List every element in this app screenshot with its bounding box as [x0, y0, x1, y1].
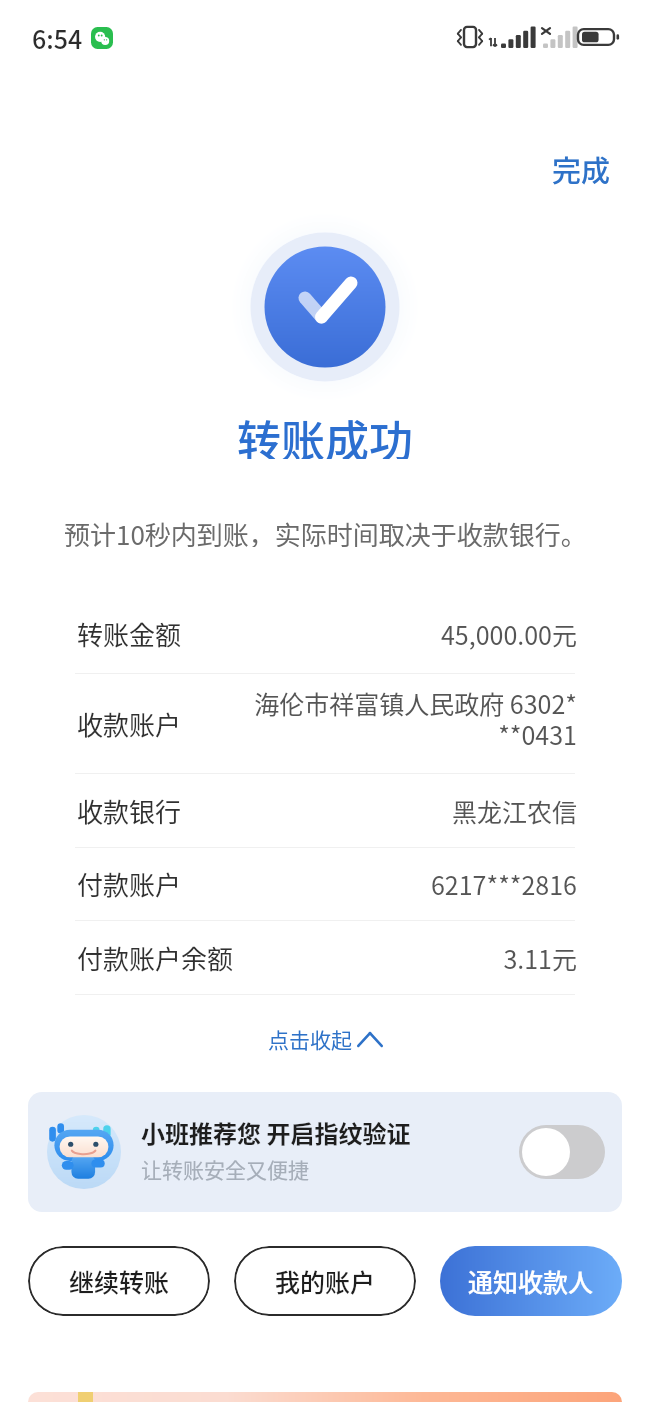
button[interactable]: [28, 1392, 622, 1402]
button[interactable]: Enable fingerprint verification: [519, 1125, 605, 1179]
staticText: 小班推荐您 开启指纹验证: [141, 1115, 411, 1150]
button[interactable]: 点击收起: [252, 1018, 399, 1060]
staticText: 转账金额: [77, 615, 182, 653]
staticText: 3.11元: [503, 940, 577, 976]
staticText: 点击收起: [268, 1024, 352, 1054]
staticText: 收款银行: [77, 792, 182, 830]
staticText: 继续转账: [69, 1263, 170, 1299]
staticText: 我的账户: [275, 1263, 376, 1299]
staticText: 收款账户: [77, 705, 182, 743]
staticText: 完成: [552, 148, 611, 190]
staticText: 付款账户: [77, 865, 182, 903]
button[interactable]: 继续转账: [28, 1246, 210, 1316]
button[interactable]: 通知收款人: [440, 1246, 622, 1316]
button[interactable]: 小班推荐您 开启指纹验证: [28, 1092, 622, 1212]
staticText: 黑龙江农信: [451, 793, 577, 829]
button[interactable]: 我的账户: [234, 1246, 416, 1316]
staticText: 6:54: [32, 20, 83, 56]
button[interactable]: 完成: [536, 138, 650, 196]
staticText: 付款账户余额: [77, 939, 234, 977]
staticText: 通知收款人: [468, 1263, 594, 1299]
staticText: 转账成功: [237, 407, 413, 459]
staticText: 6217***2816: [430, 866, 577, 902]
staticText: 让转账安全又便捷: [141, 1154, 309, 1184]
staticText: 45,000.00元: [440, 616, 577, 652]
staticText: 预计10秒内到账，实际时间取决于收款银行。: [64, 515, 587, 547]
staticText: 海伦市祥富镇人民政府 6302* **0431: [245, 685, 577, 752]
